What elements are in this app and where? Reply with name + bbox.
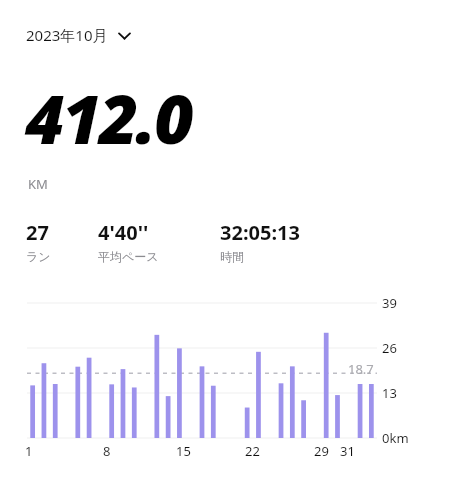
staticText: 32:05:13 <box>220 219 300 246</box>
staticText: 1 <box>25 442 33 460</box>
staticText: 27 <box>26 219 49 246</box>
staticText: 22 <box>245 442 260 460</box>
button[interactable]: 2023年10月 <box>24 21 133 49</box>
staticText: KM <box>28 175 48 193</box>
button[interactable]: 27 <box>26 219 51 264</box>
staticText: 26 <box>382 339 397 357</box>
staticText: 時間 <box>220 249 244 264</box>
staticText: 412.0 <box>25 71 192 164</box>
other: Change month <box>118 29 131 42</box>
staticText: 13 <box>382 384 397 402</box>
button[interactable]: 32:05:13 <box>220 219 300 264</box>
staticText: 平均ペース <box>98 249 159 264</box>
staticText: 4'40'' <box>98 219 149 246</box>
staticText: 18.7 <box>348 360 374 378</box>
staticText: 39 <box>382 294 397 312</box>
staticText: 8 <box>103 442 111 460</box>
staticText: 29 <box>314 442 329 460</box>
button[interactable]: 4'40'' <box>98 219 159 264</box>
staticText: 31 <box>340 442 355 460</box>
staticText: ラン <box>26 249 51 264</box>
staticText: 0km <box>382 429 409 447</box>
staticText: 15 <box>176 442 191 460</box>
staticText: 2023年10月 <box>26 25 108 45</box>
